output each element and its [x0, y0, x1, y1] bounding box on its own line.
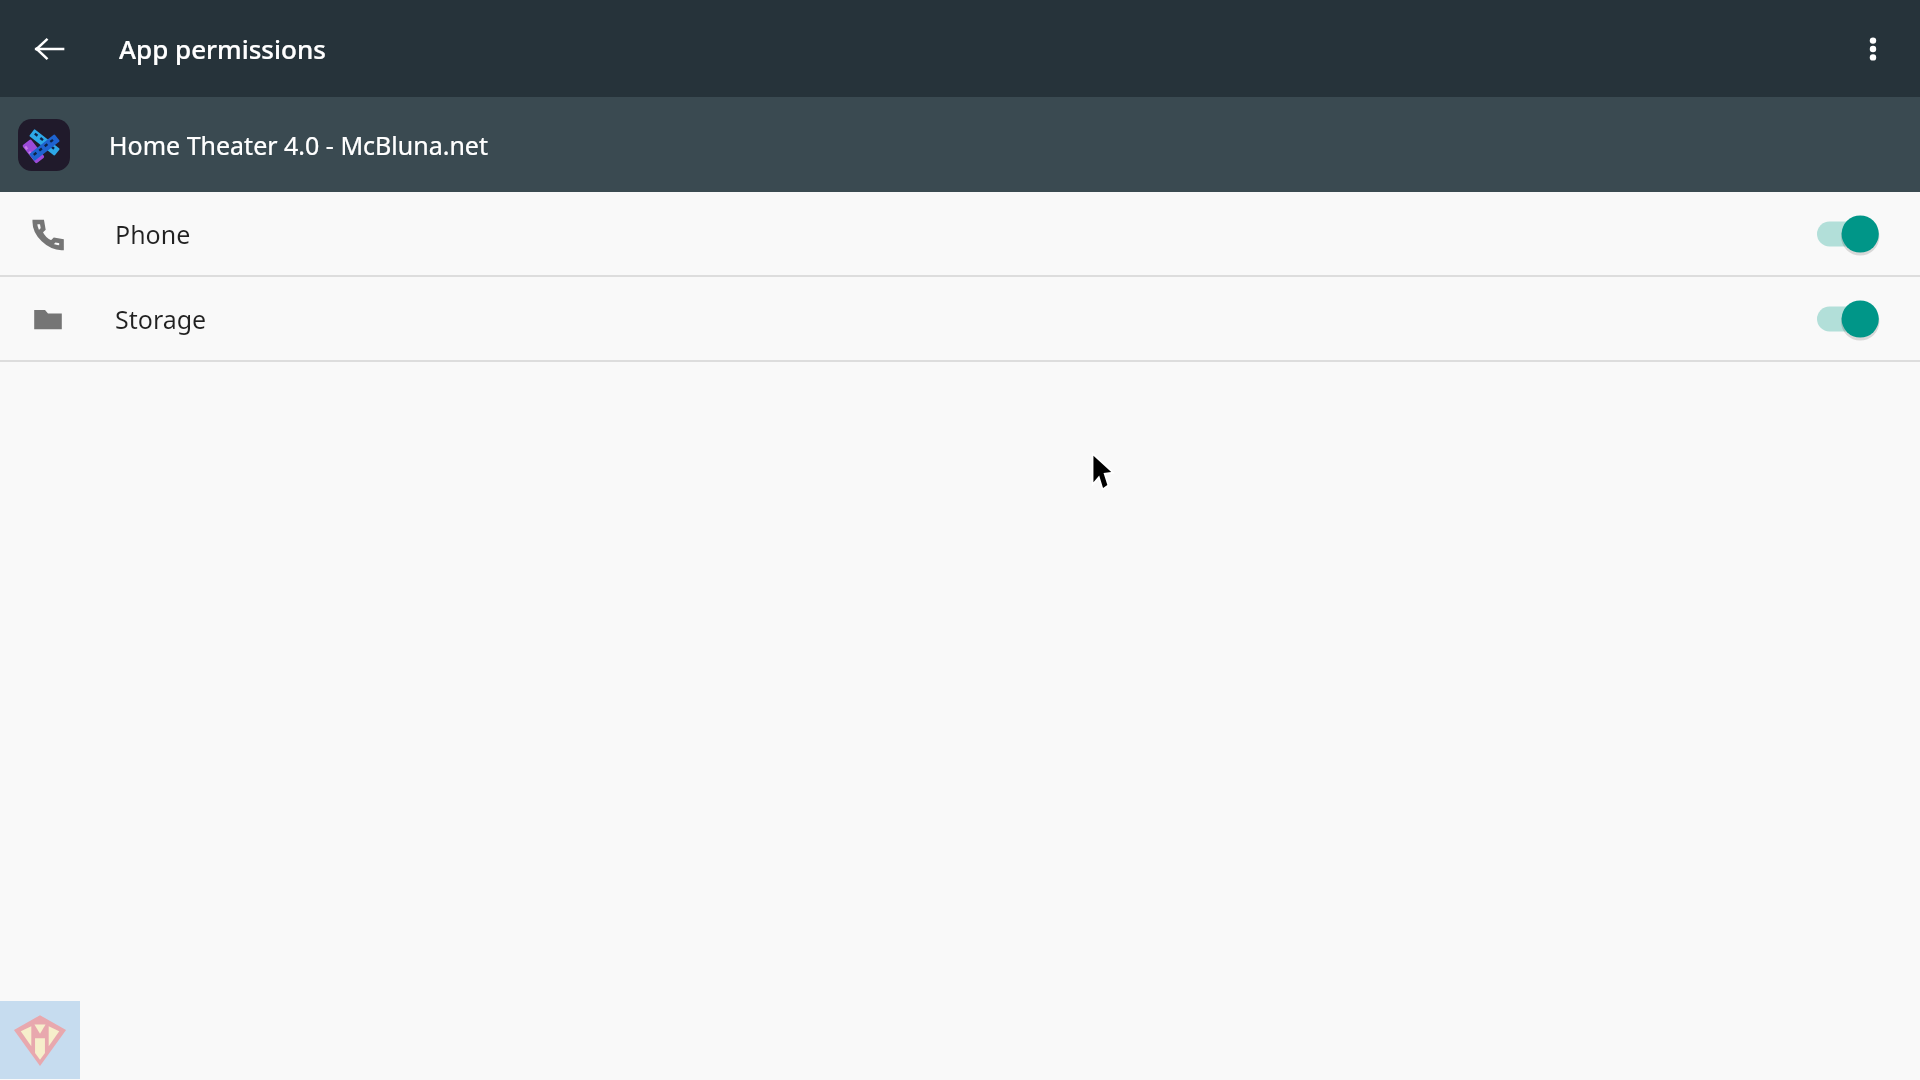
- button[interactable]: Storage: [0, 277, 1920, 360]
- button[interactable]: Home Theater 4.0 - McBluna.net: [0, 97, 1920, 192]
- button[interactable]: More options: [1844, 20, 1902, 78]
- button[interactable]: Storage permission toggle: [1802, 289, 1894, 349]
- staticText: Storage: [115, 302, 207, 336]
- button[interactable]: Phone: [0, 192, 1920, 275]
- button[interactable]: Phone permission toggle: [1802, 204, 1894, 264]
- staticText: Phone: [115, 217, 191, 251]
- staticText: Home Theater 4.0 - McBluna.net: [109, 128, 488, 162]
- button[interactable]: Back: [20, 20, 78, 78]
- staticText: App permissions: [119, 31, 326, 66]
